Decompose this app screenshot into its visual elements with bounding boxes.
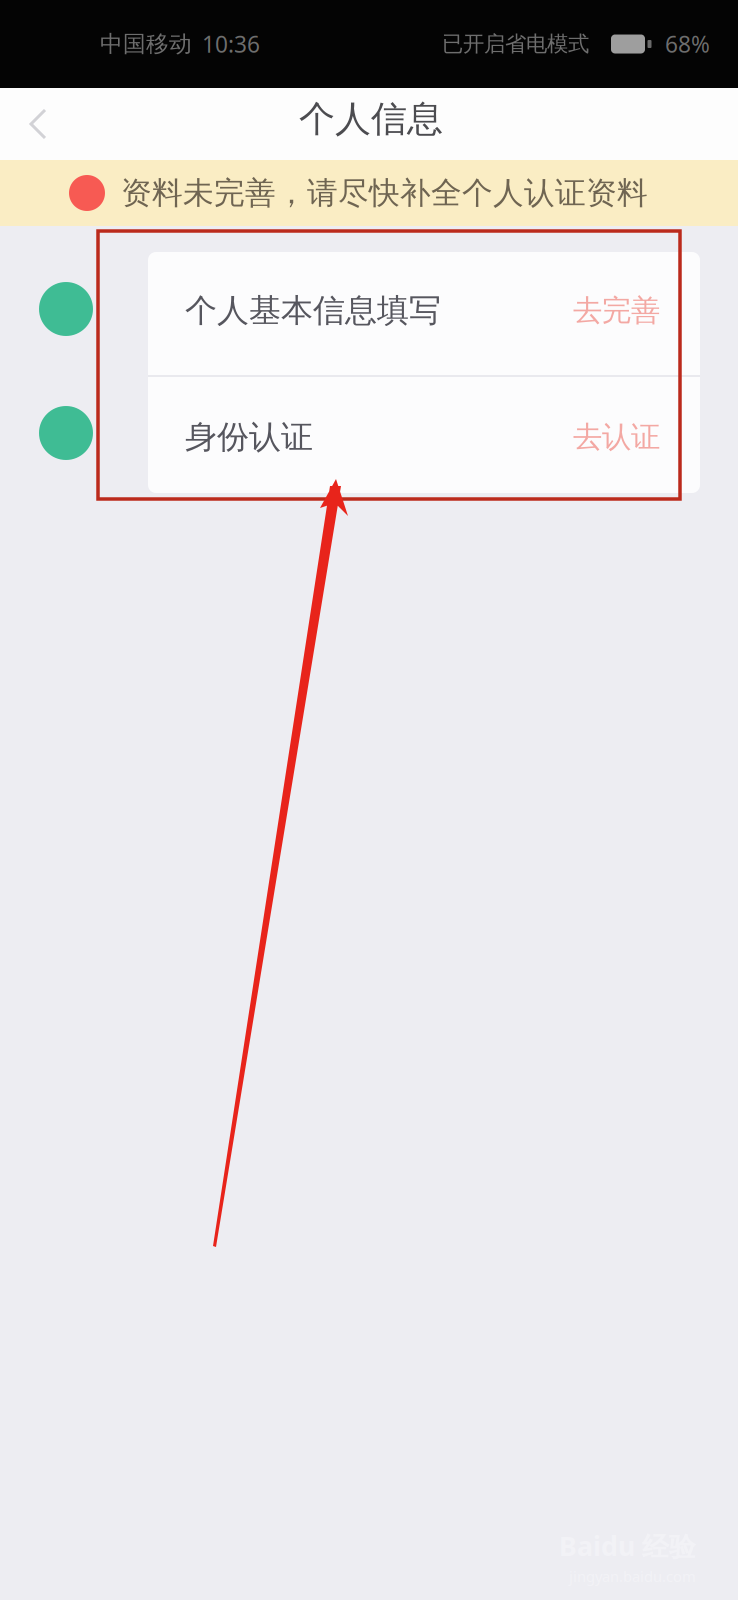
staticText: 68%	[665, 29, 710, 59]
staticText: 个人基本信息填写	[185, 291, 441, 330]
button[interactable]: 返回	[0, 88, 76, 160]
staticText: 个人信息	[299, 97, 443, 141]
staticText: 身份认证	[185, 417, 313, 457]
staticText: 资料未完善，请尽快补全个人认证资料	[121, 174, 648, 212]
staticText: 已开启省电模式	[442, 31, 589, 57]
button[interactable]: 个人基本信息填写	[148, 252, 700, 375]
staticText: 去认证	[573, 419, 660, 455]
staticText: 去完善	[573, 292, 660, 328]
button[interactable]: 资料未完善，请尽快补全个人认证资料	[0, 160, 738, 226]
staticText: 10:36	[202, 29, 260, 59]
staticText: 中国移动	[100, 30, 192, 58]
button[interactable]: 身份认证	[148, 377, 700, 493]
